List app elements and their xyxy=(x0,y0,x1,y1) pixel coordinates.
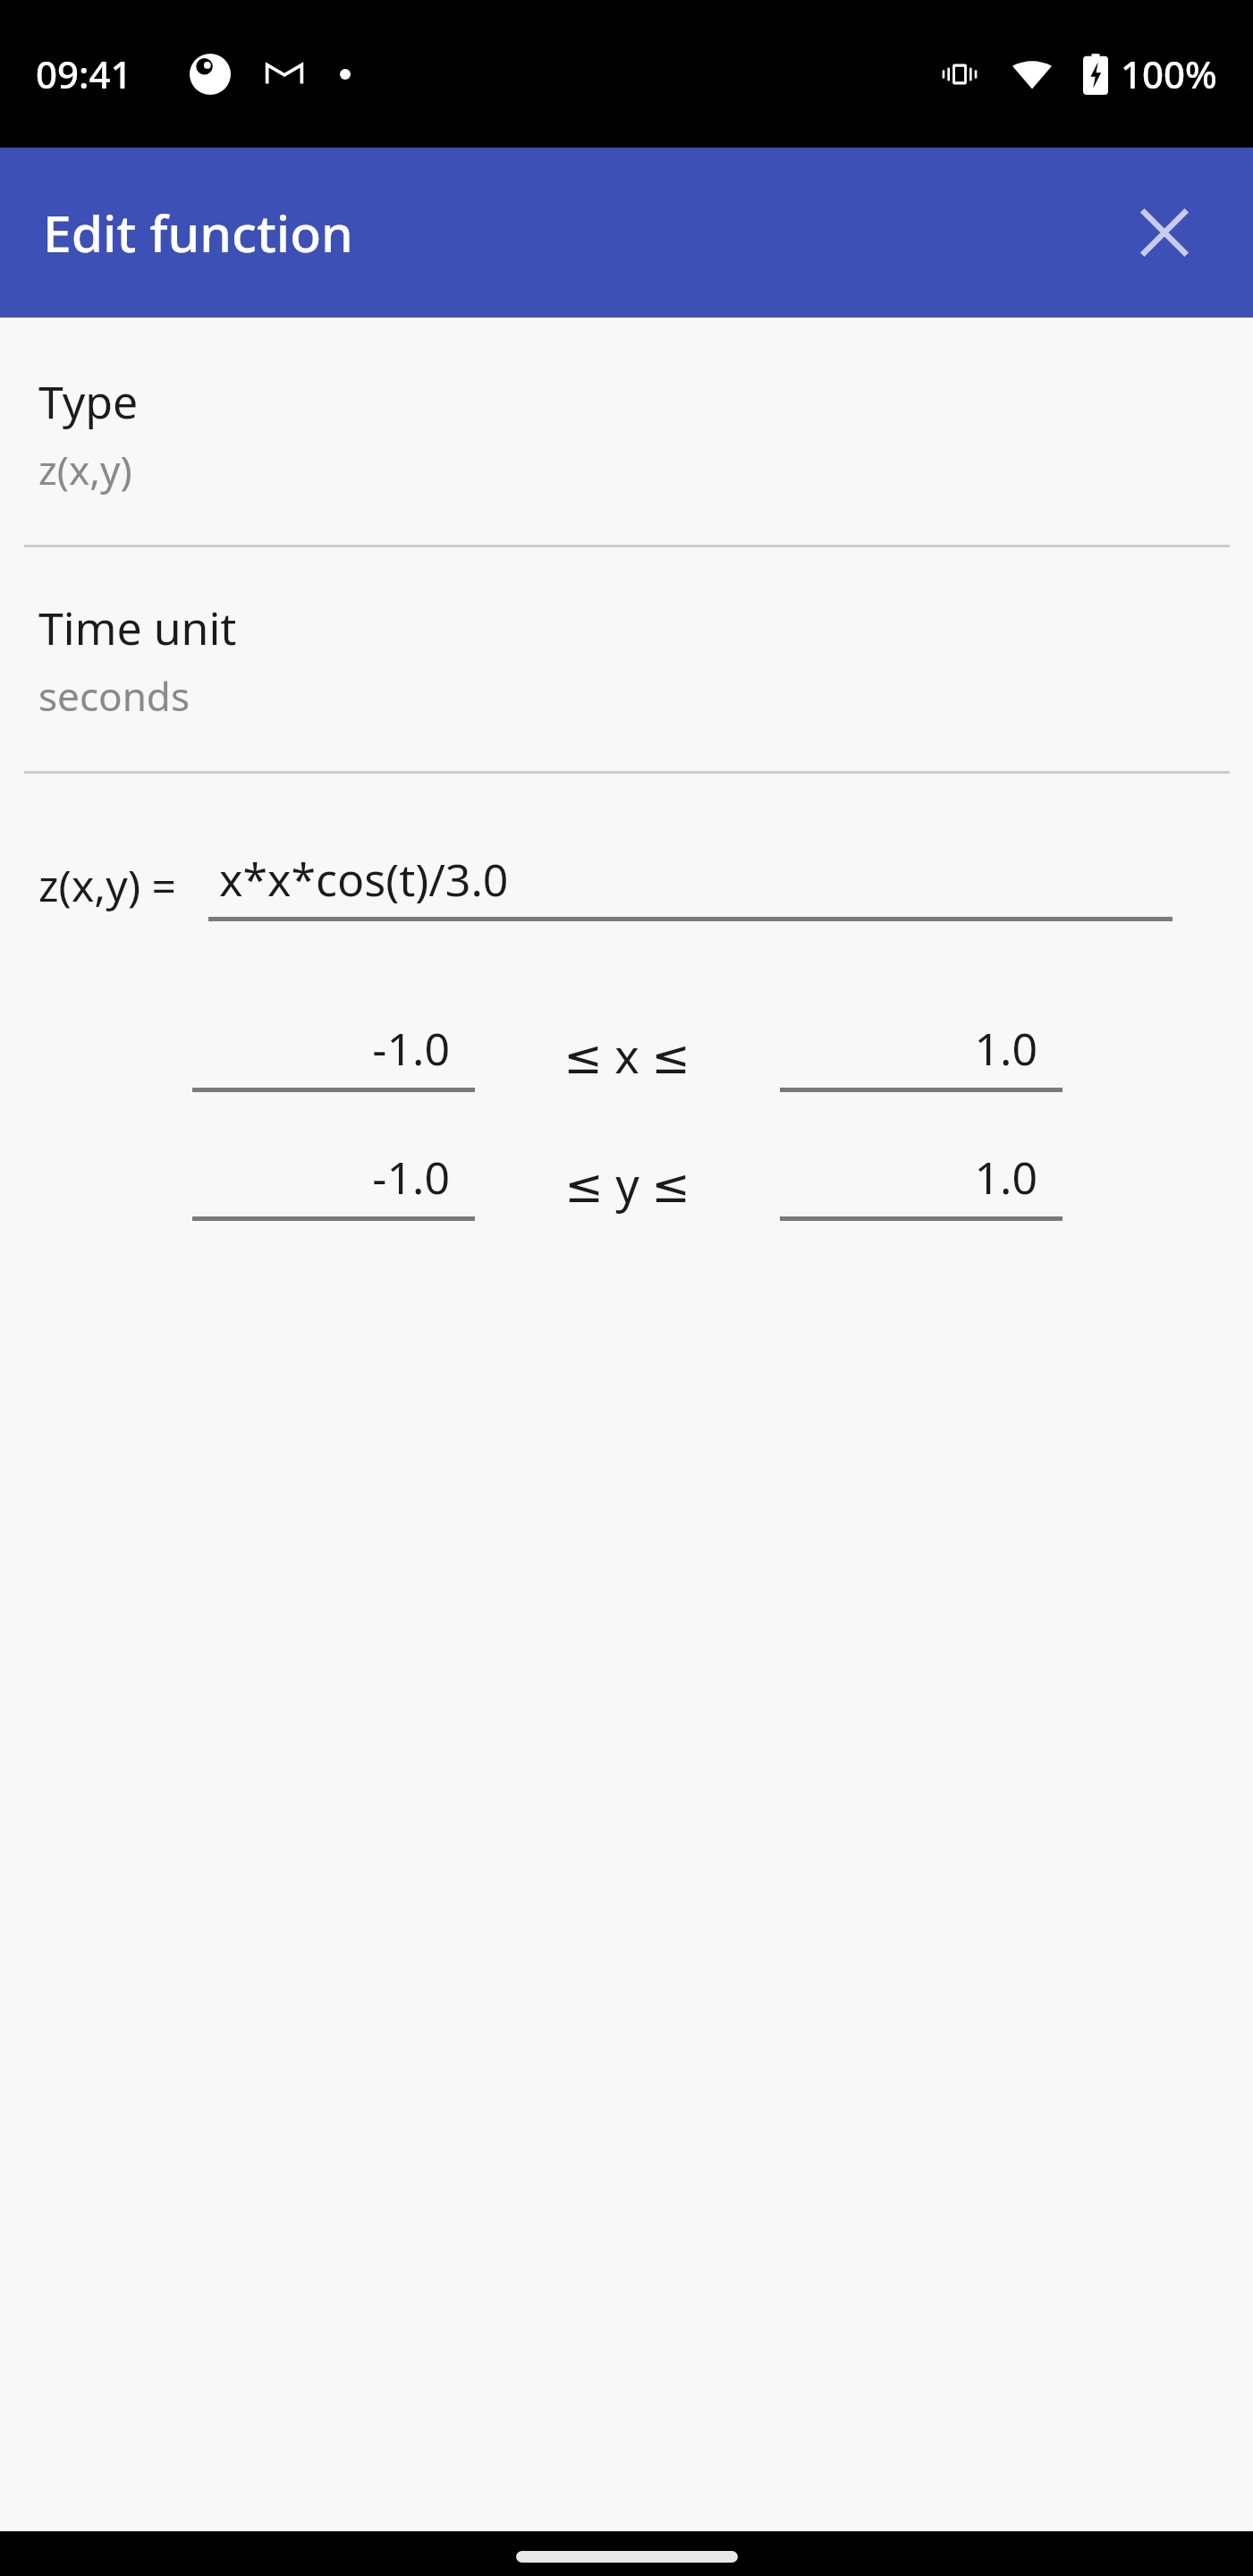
button[interactable]: -1.0 xyxy=(192,1018,475,1092)
staticText: z(x,y) xyxy=(38,443,132,496)
staticText: 1.0 xyxy=(780,1018,1037,1079)
staticText: seconds xyxy=(38,669,190,723)
button[interactable]: -1.0 xyxy=(192,1147,475,1221)
staticText: -1.0 xyxy=(192,1018,450,1079)
staticText: x*x*cos(t)/3.0 xyxy=(219,849,509,910)
staticText: z(x,y) = xyxy=(38,856,177,914)
staticText: Type xyxy=(38,371,139,432)
staticText: Time unit xyxy=(38,597,237,658)
button[interactable]: x*x*cos(t)/3.0 xyxy=(208,849,1173,921)
staticText: 09:41 xyxy=(36,48,132,99)
staticText: ≤ x ≤ xyxy=(563,1023,690,1087)
staticText: 1.0 xyxy=(780,1147,1037,1207)
button[interactable]: Time unit xyxy=(0,547,1253,771)
staticText: ≤ y ≤ xyxy=(564,1152,690,1216)
staticText: 100% xyxy=(1121,48,1217,99)
staticText: -1.0 xyxy=(192,1147,450,1207)
button[interactable]: Close xyxy=(1115,183,1214,282)
button[interactable]: Type xyxy=(0,318,1253,545)
button[interactable]: 1.0 xyxy=(780,1147,1063,1221)
button[interactable]: 1.0 xyxy=(780,1018,1063,1092)
staticText: Edit function xyxy=(43,198,353,267)
